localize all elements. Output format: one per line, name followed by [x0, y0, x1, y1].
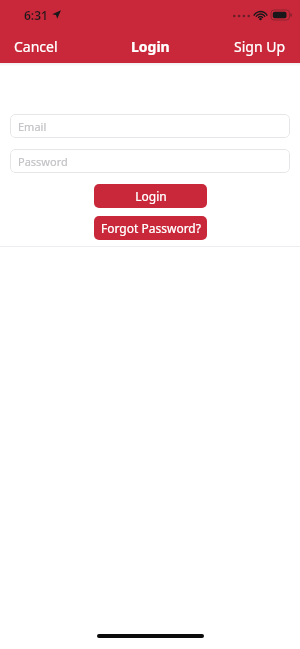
staticText: Email	[18, 119, 47, 134]
staticText: Password	[18, 154, 68, 169]
button[interactable]: Sign Up	[220, 31, 300, 62]
button[interactable]: Cancel	[0, 31, 72, 62]
button[interactable]: Password	[10, 149, 290, 173]
staticText: Forgot Password?	[101, 220, 201, 236]
staticText: Login	[135, 188, 167, 204]
button[interactable]: Email	[10, 114, 290, 138]
staticText: 6:31	[24, 7, 48, 23]
button[interactable]: Login	[94, 184, 207, 208]
button[interactable]: Forgot Password?	[94, 216, 207, 240]
staticText: Sign Up	[234, 37, 286, 56]
staticText: Login	[131, 37, 170, 56]
staticText: Cancel	[14, 37, 58, 56]
